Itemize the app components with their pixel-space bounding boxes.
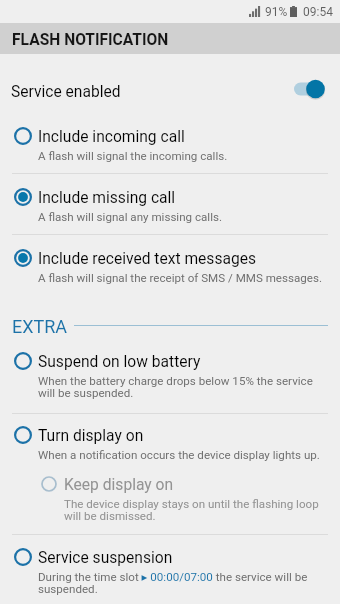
staticText: 09:54 <box>303 5 333 19</box>
staticText: Include missing call <box>38 189 176 207</box>
staticText: During the time slot ▸ 00:00/07:00 the s… <box>38 570 328 595</box>
staticText: A flash will signal any missing calls. <box>38 210 223 224</box>
staticText: Include incoming call <box>38 128 185 146</box>
button[interactable]: Service suspension <box>12 544 328 595</box>
staticText: Service suspension <box>38 549 173 567</box>
staticText: Turn display on <box>38 427 144 445</box>
staticText: When a notification occurs the device di… <box>38 448 320 462</box>
button[interactable]: Suspend on low battery <box>12 348 328 399</box>
staticText: Keep display on <box>64 476 174 494</box>
staticText: A flash will signal the incoming calls. <box>38 149 228 163</box>
staticText: Service enabled <box>11 83 121 101</box>
button[interactable]: Include received text messages <box>12 245 328 285</box>
staticText: Include received text messages <box>38 250 257 268</box>
staticText: Suspend on low battery <box>38 353 201 371</box>
staticText: EXTRA <box>12 316 68 334</box>
button[interactable]: Include incoming call <box>12 123 328 163</box>
staticText: When the battery charge drops below 15% … <box>38 374 328 399</box>
staticText: 91% <box>265 5 288 19</box>
staticText: FLASH NOTIFICATION <box>12 31 169 49</box>
staticText: A flash will signal the receipt of SMS /… <box>38 271 322 285</box>
button[interactable]: Include missing call <box>12 184 328 224</box>
button[interactable]: Service enabled <box>0 52 340 132</box>
button[interactable]: Keep display on <box>38 471 328 522</box>
staticText: The device display stays on until the fl… <box>64 497 328 522</box>
button[interactable]: Turn display on <box>12 422 328 462</box>
